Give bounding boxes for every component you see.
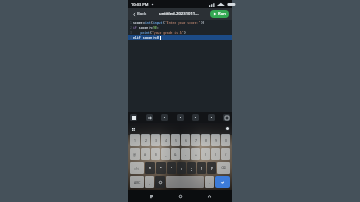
staticText: 7: [195, 138, 197, 143]
button[interactable]: =\<: [130, 162, 144, 174]
button[interactable]: :: [177, 162, 186, 174]
button[interactable]: Run: [210, 10, 229, 18]
button[interactable]: Enter: [215, 176, 230, 188]
staticText: (: [150, 31, 152, 35]
staticText: ": [160, 166, 162, 171]
staticText: -: [185, 152, 187, 157]
button[interactable]: ?: [207, 162, 216, 174]
other: Back: [132, 12, 137, 17]
staticText: if: [133, 26, 137, 30]
staticText: "Enter your score:": [165, 21, 201, 25]
button[interactable]: .: [205, 176, 214, 188]
staticText: 3: [130, 31, 132, 35]
staticText: untitled-20231011...: [159, 11, 199, 17]
button[interactable]: 7: [191, 134, 200, 146]
button[interactable]: ABC: [130, 176, 144, 188]
button[interactable]: $: [151, 148, 160, 160]
button[interactable]: 2: [141, 134, 150, 146]
staticText: =: [143, 21, 145, 25]
staticText: 10:03 PM: [131, 2, 149, 7]
staticText: ): [184, 31, 186, 35]
button[interactable]: #: [141, 148, 150, 160]
staticText: @: [133, 152, 137, 157]
button[interactable]: Profile: [225, 126, 230, 131]
button[interactable]: Back: [203, 190, 215, 202]
staticText: ?: [211, 166, 213, 171]
staticText: 5: [175, 138, 177, 143]
button[interactable]: Down: [177, 114, 184, 121]
staticText: (: [205, 152, 207, 157]
staticText: score: [133, 21, 143, 25]
staticText: input: [153, 21, 163, 25]
button[interactable]: ": [156, 162, 166, 174]
staticText: &: [174, 152, 177, 157]
staticText: /: [225, 152, 227, 157]
staticText: 1: [130, 21, 132, 25]
staticText: Back: [137, 11, 147, 17]
staticText: >=: [153, 36, 157, 40]
button[interactable]: 8: [201, 134, 210, 146]
staticText: "your grade is A": [152, 31, 184, 35]
staticText: (: [151, 21, 153, 25]
button[interactable]: *: [145, 162, 155, 174]
button[interactable]: _: [161, 148, 170, 160]
button[interactable]: Keyboard layout: [130, 126, 136, 132]
button[interactable]: +: [191, 148, 200, 160]
staticText: score: [137, 26, 149, 30]
staticText: )): [201, 21, 205, 25]
staticText: score: [141, 36, 153, 40]
button[interactable]: !: [197, 162, 206, 174]
button[interactable]: Clipboard: [130, 114, 137, 121]
staticText: ABC: [134, 180, 141, 185]
button[interactable]: @: [130, 148, 140, 160]
button[interactable]: Right: [208, 114, 215, 121]
button[interactable]: Paste: [223, 114, 230, 121]
button[interactable]: Space: [166, 176, 204, 188]
staticText: 3: [155, 138, 157, 143]
staticText: print: [133, 31, 150, 35]
staticText: :: [181, 166, 182, 171]
button[interactable]: 1: [130, 134, 140, 146]
staticText: _: [165, 152, 167, 157]
button[interactable]: Recents: [145, 190, 157, 202]
button[interactable]: Back: [131, 11, 148, 17]
staticText: ⌫: [221, 166, 226, 170]
staticText: .: [209, 180, 210, 185]
button[interactable]: Emoji: [155, 176, 165, 188]
button[interactable]: Tab: [146, 114, 153, 121]
staticText: int: [145, 21, 151, 25]
staticText: ,: [149, 180, 150, 185]
staticText: 8: [157, 36, 159, 40]
button[interactable]: ': [167, 162, 176, 174]
staticText: 90: [153, 26, 157, 30]
button[interactable]: 4: [161, 134, 170, 146]
staticText: :: [157, 26, 159, 30]
button[interactable]: Up: [161, 114, 168, 121]
button[interactable]: -: [181, 148, 190, 160]
staticText: >=: [149, 26, 153, 30]
button[interactable]: /: [221, 148, 230, 160]
staticText: 4: [165, 138, 167, 143]
staticText: elif: [133, 36, 141, 40]
button[interactable]: ): [211, 148, 220, 160]
button[interactable]: &: [171, 148, 180, 160]
button[interactable]: ,: [145, 176, 154, 188]
button[interactable]: 3: [151, 134, 160, 146]
staticText: 8: [205, 138, 207, 143]
staticText: 4: [130, 36, 132, 40]
button[interactable]: (: [201, 148, 210, 160]
staticText: 2: [130, 26, 132, 30]
staticText: ;: [191, 166, 192, 171]
button[interactable]: Left: [192, 114, 199, 121]
button[interactable]: ⌫: [217, 162, 230, 174]
button[interactable]: 5: [171, 134, 180, 146]
button[interactable]: Home: [174, 190, 186, 202]
button[interactable]: ;: [187, 162, 196, 174]
button[interactable]: 0: [221, 134, 230, 146]
button[interactable]: 9: [211, 134, 220, 146]
button[interactable]: 6: [181, 134, 190, 146]
staticText: $: [155, 152, 157, 157]
staticText: ': [171, 166, 172, 171]
staticText: 1: [134, 138, 136, 143]
staticText: 6: [185, 138, 187, 143]
